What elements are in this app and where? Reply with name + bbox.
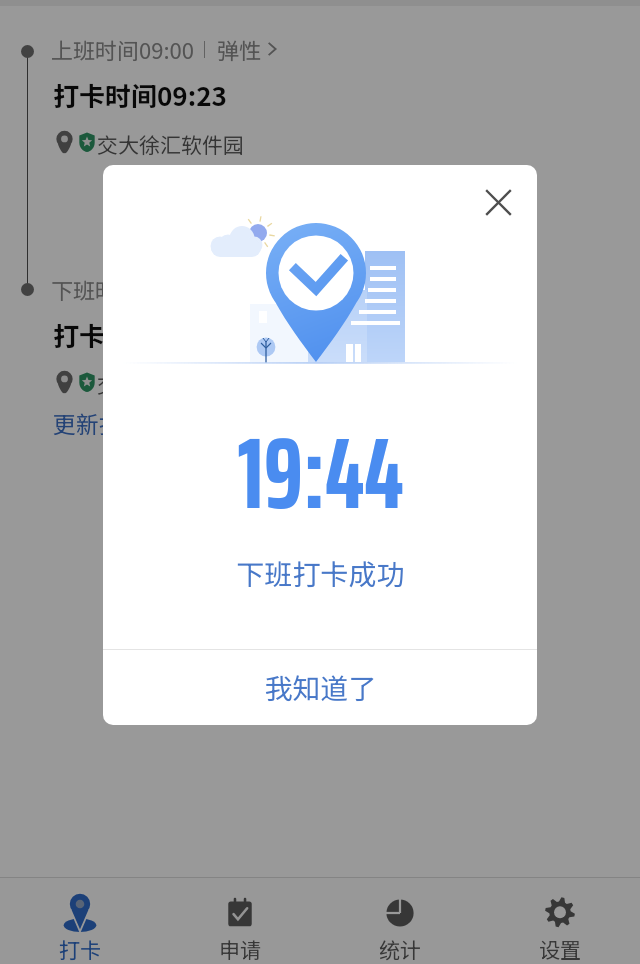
staticText: 设置 — [539, 934, 581, 964]
staticText: 交大徐汇软件园 — [97, 129, 244, 159]
staticText: 19:44 — [237, 394, 404, 551]
staticText: 打卡时间19:44 — [53, 316, 227, 354]
staticText: 交大徐汇软件园 — [97, 369, 244, 399]
button[interactable]: 下班时间18:00 — [51, 273, 278, 305]
staticText: 打卡时间09:23 — [53, 76, 227, 114]
staticText: 统计 — [379, 934, 421, 964]
staticText: 打卡 — [59, 934, 101, 964]
button[interactable]: 打卡 — [0, 878, 160, 964]
button[interactable]: 设置 — [480, 878, 640, 964]
button[interactable]: 申请 — [160, 878, 320, 964]
button[interactable]: 统计 — [320, 878, 480, 964]
staticText: 我知道了 — [264, 667, 377, 708]
staticText: 下班时间18:00 — [51, 273, 194, 305]
staticText: 下班打卡成功 — [236, 553, 405, 594]
staticText: 上班时间09:00 — [51, 33, 194, 65]
staticText: 弹性 — [217, 33, 262, 65]
button[interactable]: 更新打卡时间 — [53, 406, 191, 439]
button[interactable]: 我知道了 — [103, 650, 537, 725]
button[interactable]: Close — [472, 176, 524, 228]
button[interactable]: 上班时间09:00 — [51, 33, 278, 65]
staticText: 申请 — [219, 934, 261, 964]
